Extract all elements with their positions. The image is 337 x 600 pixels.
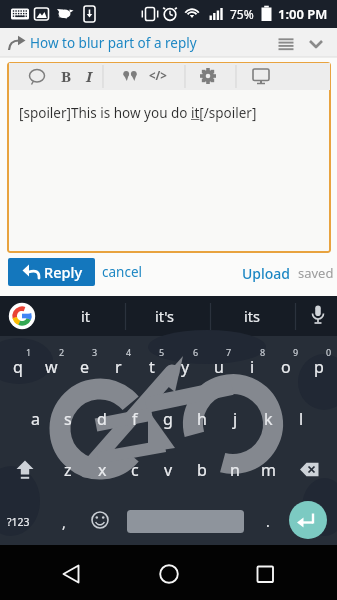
button[interactable]: B <box>6 63 126 89</box>
button[interactable]: [spoiler]This is how you do it[/spoiler] <box>7 101 331 125</box>
staticText: cancel <box>102 263 142 281</box>
button[interactable]: </> <box>98 63 218 89</box>
button[interactable]: its <box>217 296 287 336</box>
staticText: n <box>230 459 240 481</box>
staticText: its <box>244 306 260 326</box>
button[interactable]: cancel <box>62 259 182 285</box>
button[interactable]: , <box>53 508 75 536</box>
button[interactable]: r <box>103 352 133 382</box>
staticText: it <box>81 306 90 326</box>
button[interactable]: it <box>50 296 120 336</box>
button[interactable]: s <box>53 404 83 434</box>
button[interactable]: y <box>170 352 200 382</box>
button[interactable]: ?123 <box>1 508 35 536</box>
staticText: u <box>214 356 224 378</box>
staticText: f <box>132 408 138 430</box>
button[interactable] <box>303 31 329 57</box>
button[interactable]: o <box>271 352 301 382</box>
staticText: j <box>233 408 238 430</box>
button[interactable]: v <box>153 455 183 485</box>
button[interactable] <box>147 552 191 596</box>
button[interactable] <box>289 449 331 491</box>
staticText: I <box>86 66 93 86</box>
button[interactable]: w <box>36 352 66 382</box>
button[interactable]: b <box>187 455 217 485</box>
button[interactable] <box>127 510 244 533</box>
button[interactable]: f <box>120 404 150 434</box>
staticText: 1:00 PM <box>278 5 328 23</box>
button[interactable]: n <box>220 455 250 485</box>
staticText: How to blur part of a reply <box>30 34 197 52</box>
staticText: o <box>281 356 291 378</box>
staticText: d <box>97 408 107 430</box>
button[interactable] <box>4 449 46 491</box>
button[interactable] <box>117 63 143 89</box>
button[interactable]: a <box>20 404 50 434</box>
button[interactable]: Upload <box>206 260 326 286</box>
staticText: g <box>163 408 173 430</box>
staticText: x <box>98 459 107 481</box>
staticText: saved <box>298 264 334 282</box>
button[interactable] <box>24 63 50 89</box>
button[interactable]: x <box>87 455 117 485</box>
staticText: b <box>197 459 207 481</box>
button[interactable]: c <box>120 455 150 485</box>
staticText: m <box>261 459 276 481</box>
button[interactable]: d <box>87 404 117 434</box>
staticText: p <box>314 356 324 378</box>
button[interactable] <box>8 258 95 286</box>
button[interactable]: q <box>3 352 33 382</box>
button[interactable] <box>82 502 118 538</box>
staticText: l <box>299 408 304 430</box>
button[interactable]: it's <box>130 296 200 336</box>
staticText: </> <box>149 68 167 84</box>
staticText: v <box>164 459 173 481</box>
staticText: 6 <box>193 346 199 358</box>
staticText: 5 <box>159 346 165 358</box>
staticText: , <box>62 513 66 532</box>
staticText: a <box>31 408 40 430</box>
staticText: 4 <box>126 346 132 358</box>
staticText: z <box>64 459 72 481</box>
staticText: 0 <box>326 346 332 358</box>
button[interactable]: t <box>137 352 167 382</box>
button[interactable]: m <box>253 455 283 485</box>
button[interactable] <box>195 63 221 89</box>
staticText: 9 <box>293 346 299 358</box>
button[interactable]: e <box>70 352 100 382</box>
button[interactable] <box>289 501 327 539</box>
staticText: 3 <box>92 346 98 358</box>
staticText: q <box>13 356 23 378</box>
button[interactable]: l <box>286 404 316 434</box>
button[interactable] <box>243 552 287 596</box>
button[interactable]: h <box>187 404 217 434</box>
staticText: k <box>264 408 273 430</box>
staticText: 1 <box>26 346 32 358</box>
button[interactable]: p <box>304 352 334 382</box>
button[interactable]: . <box>257 507 279 535</box>
button[interactable]: z <box>53 455 83 485</box>
staticText: 7 <box>226 346 232 358</box>
staticText: h <box>197 408 207 430</box>
button[interactable]: u <box>204 352 234 382</box>
staticText: c <box>131 459 139 481</box>
button[interactable] <box>301 295 335 335</box>
button[interactable]: g <box>153 404 183 434</box>
staticText: s <box>64 408 72 430</box>
staticText: 75% <box>230 6 254 22</box>
staticText: B <box>61 66 72 86</box>
staticText: w <box>45 356 58 378</box>
button[interactable]: k <box>253 404 283 434</box>
staticText: 8 <box>260 346 266 358</box>
staticText: y <box>181 356 190 378</box>
button[interactable] <box>5 295 39 335</box>
button[interactable] <box>49 552 93 596</box>
staticText: t <box>149 356 155 378</box>
button[interactable]: i <box>237 352 267 382</box>
staticText: it's <box>155 306 175 326</box>
button[interactable]: j <box>220 404 250 434</box>
button[interactable] <box>273 31 299 57</box>
staticText: Reply <box>44 262 83 282</box>
button[interactable]: I <box>29 63 149 89</box>
button[interactable] <box>248 63 274 89</box>
